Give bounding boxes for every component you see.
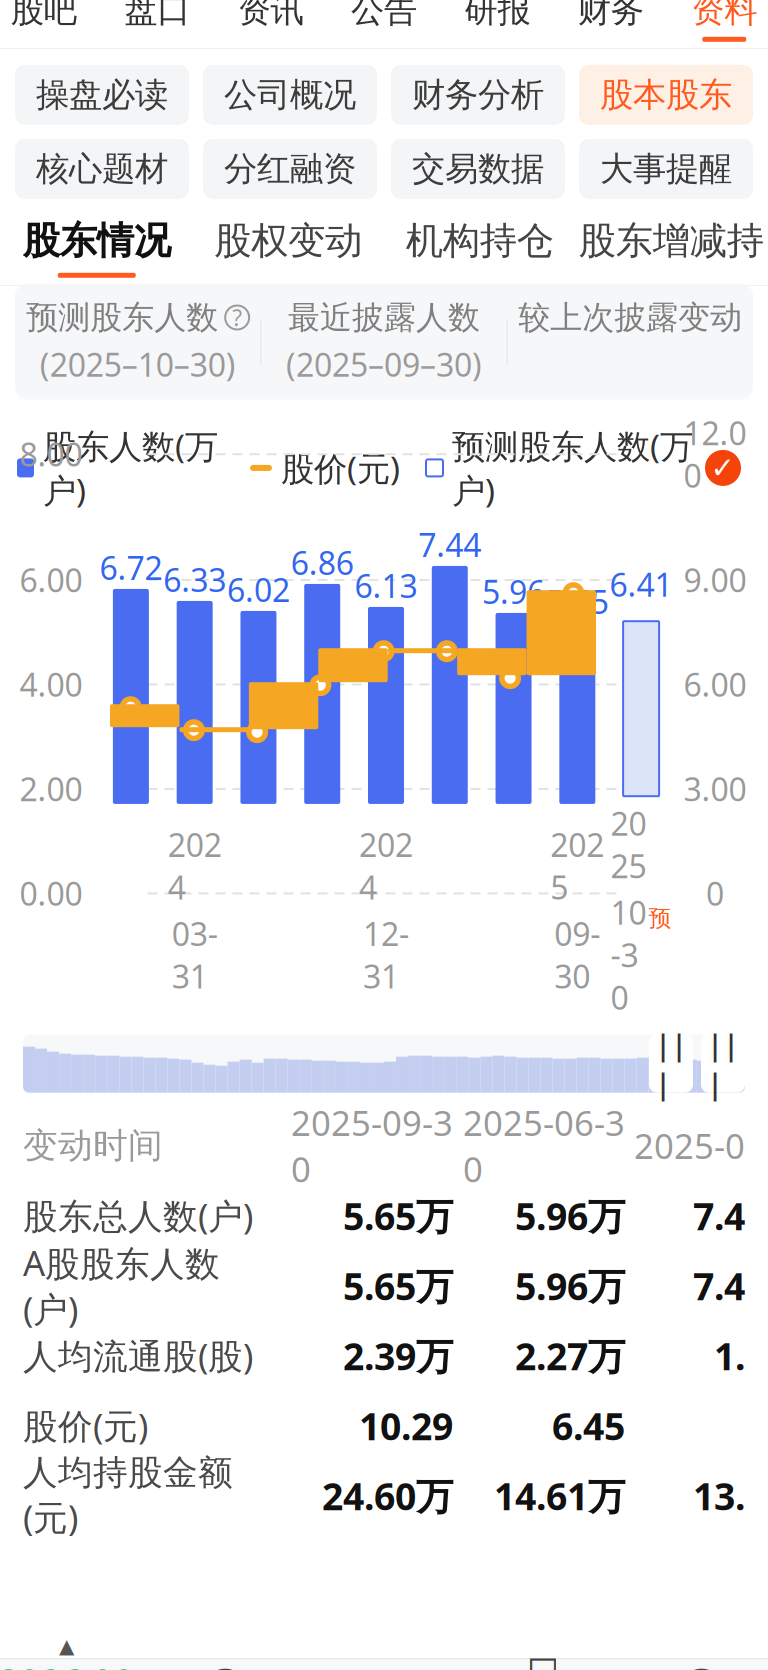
staticText: 24.60万 [322,1471,453,1520]
button[interactable]: 盘口 [100,0,214,48]
staticText: 财务 [578,0,644,31]
staticText: 较上次披露变动 [518,298,742,337]
staticText: 2024 [168,823,222,908]
button[interactable]: 公告 [327,0,441,48]
staticText: 大事提醒 [600,148,732,189]
staticText: 10-30 [611,891,647,1019]
staticText: 6.41 [610,563,673,606]
button[interactable]: 确认 [705,450,741,486]
staticText: 6.00 [683,663,746,706]
staticText: 8.00 [19,433,82,475]
staticText: 盘口 [124,0,190,31]
button[interactable]: 操盘必读 [15,65,189,125]
staticText: 资讯 [238,0,304,31]
staticText: 7.4 [693,1261,745,1310]
button[interactable]: 股本股东 [579,65,753,125]
staticText: 14.61万 [494,1471,625,1520]
staticText: 分红融资 [224,148,356,189]
staticText: 09-30 [554,912,600,997]
staticText: 最近披露人数 [288,298,480,337]
staticText: 人均持股金额(元) [23,1451,233,1540]
staticText: 2025-06-30 [463,1100,625,1192]
staticText: 2024 [359,823,413,908]
staticText: 2025-0 [634,1123,745,1169]
staticText: 机构持仓 [406,218,554,264]
staticText: (2025–09–30) [286,343,482,386]
staticText: ¥ [216,1669,234,1670]
staticText: 12.00 [683,412,746,497]
staticText: 财务分析 [412,74,544,115]
staticText: A股股东人数(户) [23,1239,220,1332]
staticText: ? [232,302,242,333]
staticText: ▲ [59,1635,74,1657]
staticText: 5.65万 [343,1261,453,1310]
button[interactable]: 股东情况 [1,211,192,285]
staticText: 股本股东 [600,74,732,115]
staticText: 2025 [611,802,647,887]
staticText: 预测股东人数(万户) [452,424,693,512]
staticText: 股东人数(万户) [43,424,218,512]
staticText: 9.00 [683,559,746,601]
staticText: 03-31 [172,912,218,997]
staticText: ||| [707,1025,739,1103]
button[interactable]: 交易数据 [391,139,565,199]
staticText: 10.29 [359,1401,453,1450]
staticText: 公告 [351,0,417,31]
staticText: 变动时间 [23,1124,163,1167]
staticText: 2025 [550,823,604,908]
staticText: 股价(元) [23,1403,148,1449]
staticText: 5.65 [546,580,609,623]
button[interactable]: 股东增减持 [575,211,767,285]
staticText: 2.39万 [343,1331,453,1380]
staticText: 交易数据 [412,148,544,189]
button[interactable]: 上证指数 3986.90 [0,1635,146,1670]
staticText: 12-31 [363,912,409,997]
button[interactable]: 研报 [441,0,554,48]
staticText: 股东情况 [23,218,171,264]
button[interactable]: 资讯 [214,0,327,48]
staticText: 人均流通股(股) [23,1333,253,1379]
staticText: 预测股东人数 [26,298,218,337]
staticText: 5.65万 [343,1191,453,1240]
button[interactable]: 财务分析 [391,65,565,125]
staticText: 2025-09-30 [291,1100,453,1192]
staticText: 7.4 [693,1191,745,1240]
staticText: (2025–10–30) [40,343,236,386]
button[interactable]: 资料 [668,0,768,48]
staticText: 股权变动 [214,218,362,264]
staticText: 股吧 [11,0,77,31]
button[interactable]: 公司概况 [203,65,377,125]
staticText: 1. [714,1331,745,1380]
staticText: 2.27万 [515,1331,625,1380]
staticText: 公司概况 [224,74,356,115]
staticText: 股价(元) [281,446,400,490]
staticText: 6.33 [163,558,226,601]
staticText: 5.96万 [515,1261,625,1310]
button[interactable]: 大事提醒 [579,139,753,199]
staticText: ◻◇ [526,1645,559,1670]
staticText: 3986.90 [0,1657,134,1670]
staticText: 6.13 [354,564,417,607]
staticText: 操盘必读 [36,74,168,115]
button[interactable]: 股权变动 [192,211,384,285]
button[interactable]: 核心题材 [15,139,189,199]
staticText: 股东总人数(户) [23,1193,253,1239]
staticText: 3.00 [683,768,746,810]
staticText: 6.02 [227,568,290,611]
staticText: 7.44 [418,523,481,566]
staticText: 研报 [464,0,530,31]
staticText: 5.96 [482,570,545,613]
staticText: 核心题材 [36,148,168,189]
button[interactable]: 分红融资 [203,139,377,199]
button[interactable]: 股吧 [0,0,100,48]
button[interactable]: 机构持仓 [384,211,575,285]
button[interactable]: 财务 [554,0,667,48]
staticText: ··· [688,1669,715,1670]
button[interactable]: 左侧缩放手柄 [649,1035,693,1093]
button[interactable]: 右侧缩放手柄 [701,1035,745,1093]
staticText: 0 [706,872,724,915]
staticText: 6.00 [19,559,82,601]
staticText: 5.96万 [515,1191,625,1240]
staticText: 6.45 [552,1401,625,1450]
